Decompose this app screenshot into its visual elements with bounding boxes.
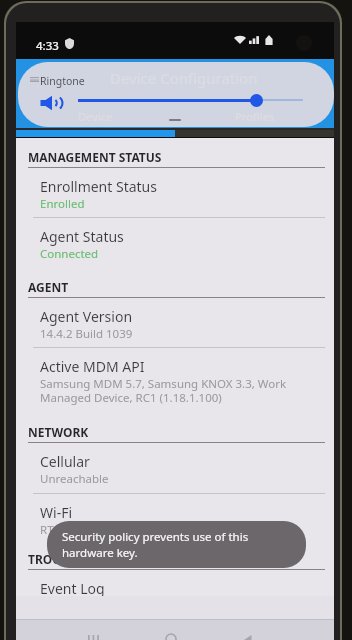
button[interactable]: Profiles	[175, 107, 334, 125]
staticText: Wi-Fi	[40, 503, 73, 522]
staticText: RT	[40, 522, 54, 538]
button[interactable]: Wi-Fi	[16, 494, 334, 540]
staticText: MANAGEMENT STATUS	[28, 149, 162, 165]
staticText: Device	[78, 109, 113, 124]
staticText: Event Log	[40, 579, 105, 598]
button[interactable]: Home	[157, 630, 185, 640]
button[interactable]: Event Log	[16, 570, 334, 610]
staticText: Active MDM API	[40, 357, 145, 376]
staticText: Security policy prevents use of this har…	[62, 529, 249, 560]
staticText: Ringtone	[40, 74, 85, 88]
staticText: 14.4.2 Build 1039	[40, 326, 133, 342]
staticText: Unreachable	[40, 471, 109, 487]
staticText: 4:33	[36, 38, 59, 54]
staticText: Agent Status	[40, 227, 124, 246]
button[interactable]: Enrollment Status	[16, 168, 334, 218]
staticText: TROUBLESHOOTING	[28, 551, 148, 567]
staticText: NETWORK	[28, 424, 89, 440]
staticText: Enrolled	[40, 196, 85, 212]
button[interactable]: Active MDM API	[16, 348, 334, 411]
button[interactable]: Back	[235, 630, 263, 640]
button[interactable]: Agent Version	[16, 298, 334, 348]
staticText: Profiles	[235, 109, 275, 124]
staticText: Device Configuration	[110, 68, 258, 88]
button[interactable]: Cellular	[16, 443, 334, 494]
staticText: AGENT	[28, 279, 69, 295]
button[interactable]: Device	[16, 107, 175, 125]
staticText: Samsung MDM 5.7, Samsung KNOX 3.3, Work …	[40, 376, 287, 405]
button[interactable]: Recent apps	[79, 630, 107, 640]
staticText: Connected	[40, 246, 99, 262]
staticText: Enrollment Status	[40, 177, 157, 196]
staticText: Agent Version	[40, 307, 133, 326]
button[interactable]: Agent Status	[16, 218, 334, 268]
staticText: Cellular	[40, 452, 90, 471]
